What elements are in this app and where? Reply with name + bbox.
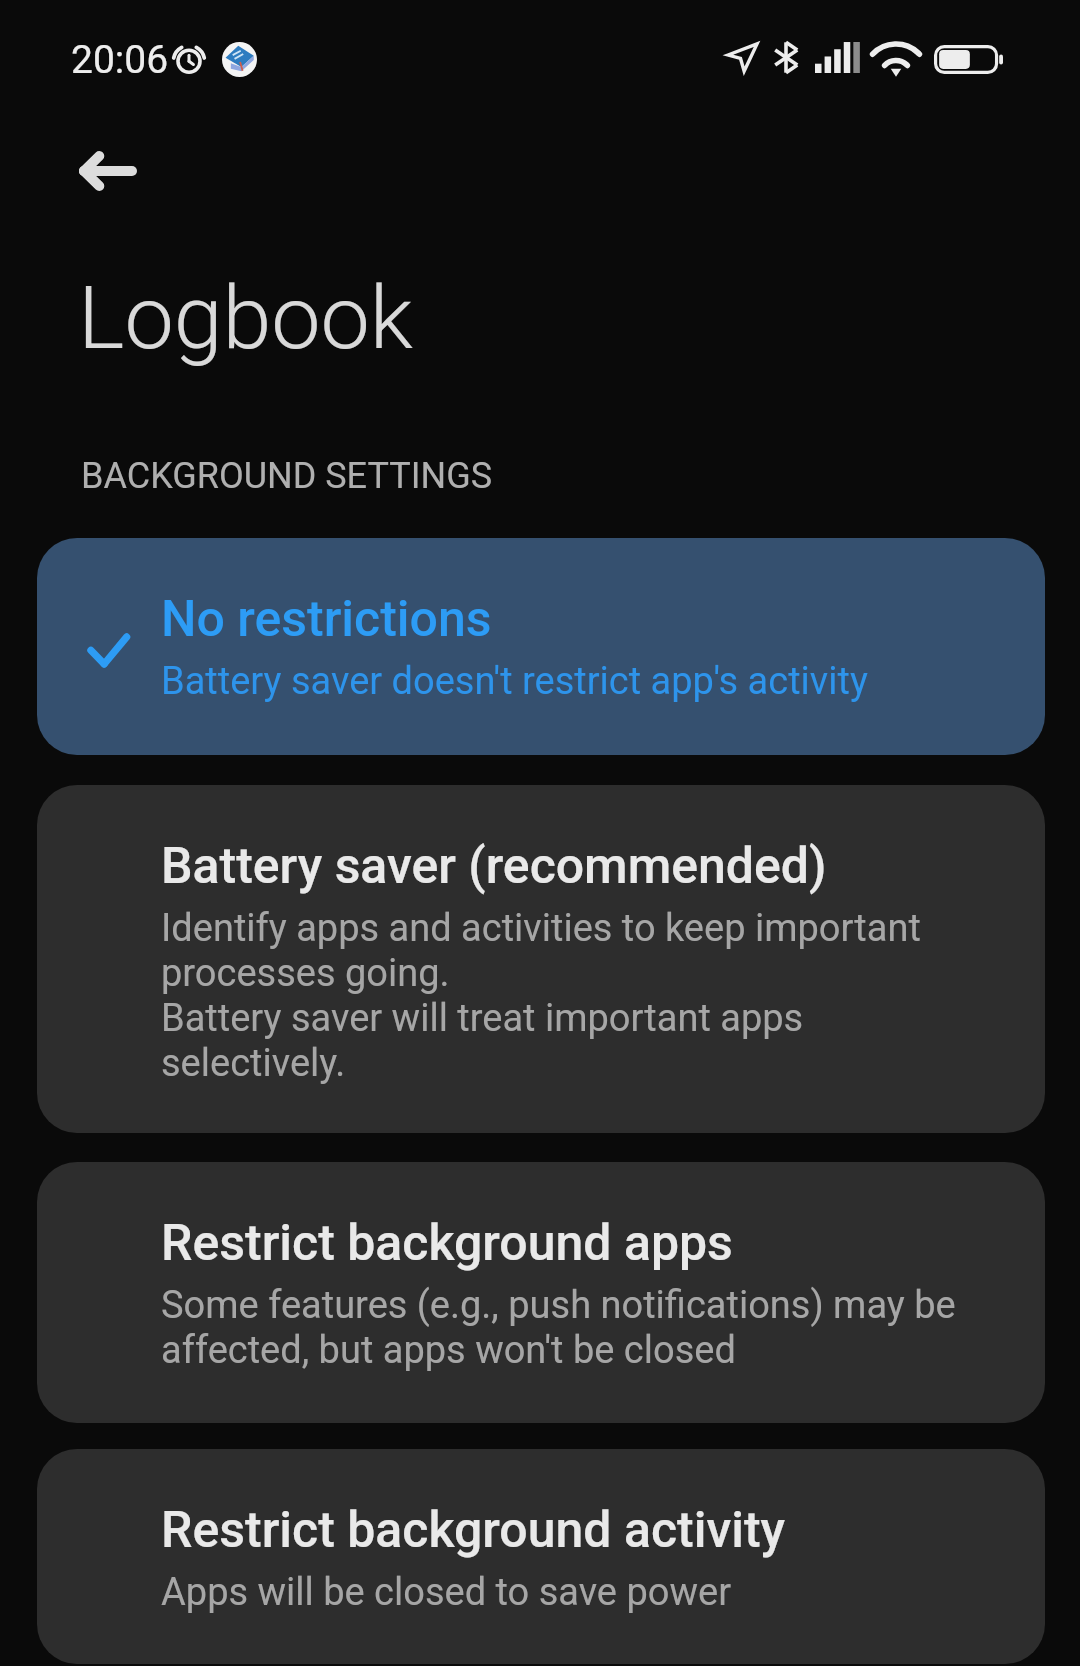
button[interactable]: Restrict background activity (37, 1449, 1045, 1664)
staticText: Restrict background apps (161, 1214, 733, 1272)
staticText: No restrictions (161, 590, 492, 648)
staticText: Battery saver (recommended) (161, 837, 827, 895)
staticText: Identify apps and activities to keep imp… (161, 905, 971, 1085)
staticText: Battery saver doesn't restrict app's act… (161, 658, 868, 703)
button[interactable]: Restrict background apps (37, 1162, 1045, 1423)
button[interactable]: Back (62, 129, 154, 213)
staticText: 20:06 (71, 37, 169, 83)
button[interactable]: No restrictions (37, 538, 1045, 755)
staticText: Logbook (78, 269, 413, 369)
staticText: Some features (e.g., push notifications)… (161, 1282, 971, 1372)
button[interactable]: Battery saver (recommended) (37, 785, 1045, 1133)
staticText: BACKGROUND SETTINGS (81, 455, 493, 497)
staticText: Restrict background activity (161, 1501, 786, 1559)
staticText: Apps will be closed to save power (161, 1569, 732, 1614)
